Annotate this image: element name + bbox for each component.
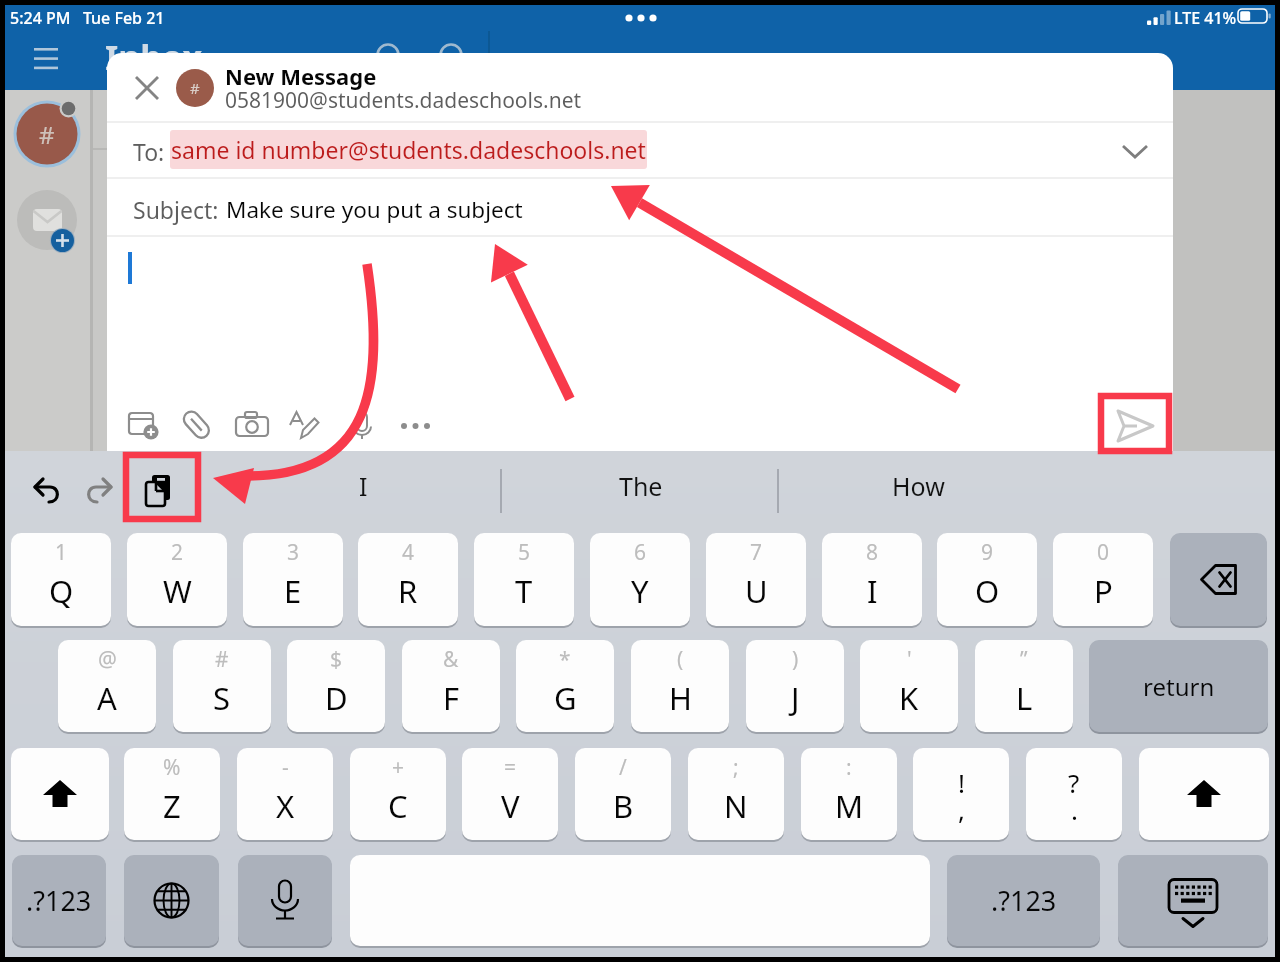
- button[interactable]: Menu: [25, 38, 69, 82]
- button[interactable]: Dictate: [340, 403, 384, 447]
- button[interactable]: 7: [706, 533, 806, 626]
- staticText: F: [443, 677, 460, 719]
- button[interactable]: Redo: [78, 467, 126, 515]
- staticText: *: [559, 645, 571, 674]
- button[interactable]: ”: [975, 640, 1073, 732]
- staticText: .: [1071, 792, 1078, 827]
- staticText: ;: [733, 753, 739, 782]
- staticText: ”: [1020, 645, 1028, 674]
- staticText: same id number@students.dadeschools.net: [171, 134, 646, 165]
- button[interactable]: 0: [1053, 533, 1153, 626]
- staticText: 5: [518, 538, 531, 567]
- staticText: .?123: [26, 882, 92, 919]
- staticText: #: [190, 78, 200, 98]
- staticText: Inbox: [105, 34, 203, 80]
- staticText: R: [398, 570, 418, 612]
- button[interactable]: Attach: [174, 403, 218, 447]
- staticText: $: [330, 645, 343, 674]
- button[interactable]: $: [287, 640, 385, 732]
- staticText: B: [613, 785, 634, 827]
- button[interactable]: ): [746, 640, 844, 732]
- button[interactable]: Send: [1106, 398, 1164, 451]
- button[interactable]: 9: [937, 533, 1037, 626]
- staticText: /: [619, 753, 627, 782]
- staticText: W: [163, 570, 192, 612]
- staticText: H: [669, 677, 692, 719]
- button[interactable]: Expand recipients: [1110, 127, 1160, 175]
- staticText: %: [163, 753, 181, 782]
- button[interactable]: 5: [474, 533, 574, 626]
- button[interactable]: :: [801, 748, 897, 840]
- button[interactable]: Attach file: [122, 403, 166, 447]
- button[interactable]: ?: [1026, 748, 1122, 840]
- button[interactable]: &: [402, 640, 500, 732]
- staticText: 1: [55, 538, 68, 567]
- staticText: (: [677, 645, 684, 674]
- staticText: U: [745, 570, 768, 612]
- button[interactable]: 6: [590, 533, 690, 626]
- staticText: New Message: [225, 61, 377, 91]
- button[interactable]: /: [575, 748, 671, 840]
- button[interactable]: How: [848, 458, 988, 514]
- button[interactable]: Account: [13, 100, 81, 168]
- button[interactable]: %: [124, 748, 220, 840]
- staticText: @: [98, 645, 117, 674]
- staticText: C: [388, 785, 408, 827]
- staticText: 0581900@students.dadeschools.net: [225, 86, 582, 115]
- button[interactable]: Undo: [22, 467, 70, 515]
- staticText: ): [792, 645, 799, 674]
- button[interactable]: Return: [1089, 640, 1268, 732]
- button[interactable]: The: [571, 458, 711, 514]
- staticText: 5:24 PM Tue Feb 21: [10, 7, 165, 29]
- button[interactable]: Camera: [230, 403, 274, 447]
- button[interactable]: Dictate: [238, 855, 332, 946]
- button[interactable]: 3: [243, 533, 343, 626]
- staticText: M: [835, 785, 864, 827]
- staticText: K: [899, 677, 919, 719]
- staticText: T: [515, 570, 533, 612]
- button[interactable]: *: [516, 640, 614, 732]
- staticText: LTE 41%: [1174, 7, 1237, 29]
- button[interactable]: 2: [127, 533, 227, 626]
- staticText: 6: [634, 538, 647, 567]
- button[interactable]: #: [173, 640, 271, 732]
- staticText: #: [39, 118, 55, 151]
- button[interactable]: Backspace: [1170, 533, 1267, 626]
- button[interactable]: !: [913, 748, 1009, 840]
- button[interactable]: Hide keyboard: [1118, 855, 1268, 946]
- button[interactable]: New mail: [17, 190, 77, 250]
- button[interactable]: 4: [358, 533, 458, 626]
- staticText: Subject:: [133, 194, 219, 225]
- staticText: N: [724, 785, 748, 827]
- button[interactable]: Shift: [11, 748, 109, 840]
- staticText: O: [975, 570, 1000, 612]
- button[interactable]: =: [462, 748, 558, 840]
- staticText: L: [1016, 677, 1033, 719]
- button[interactable]: Change language: [124, 855, 219, 946]
- button[interactable]: Numbers: [947, 855, 1100, 946]
- button[interactable]: Formatting: [283, 403, 327, 447]
- button[interactable]: I: [293, 458, 433, 514]
- staticText: :: [846, 753, 852, 782]
- staticText: D: [325, 677, 348, 719]
- staticText: To:: [133, 136, 165, 167]
- button[interactable]: +: [350, 748, 446, 840]
- button[interactable]: Close: [121, 62, 173, 114]
- button[interactable]: -: [237, 748, 333, 840]
- button[interactable]: Numbers: [12, 855, 106, 946]
- button[interactable]: ': [860, 640, 958, 732]
- button[interactable]: Paste: [136, 467, 184, 515]
- staticText: ?: [1068, 765, 1080, 800]
- button[interactable]: Shift: [1139, 748, 1269, 840]
- button[interactable]: @: [58, 640, 156, 732]
- button[interactable]: More options: [393, 403, 437, 447]
- button[interactable]: (: [631, 640, 729, 732]
- button[interactable]: 1: [11, 533, 111, 626]
- staticText: +: [392, 753, 405, 782]
- button[interactable]: 8: [822, 533, 922, 626]
- staticText: 2: [171, 538, 184, 567]
- staticText: I: [359, 469, 368, 503]
- button[interactable]: ;: [688, 748, 784, 840]
- staticText: &: [443, 645, 459, 674]
